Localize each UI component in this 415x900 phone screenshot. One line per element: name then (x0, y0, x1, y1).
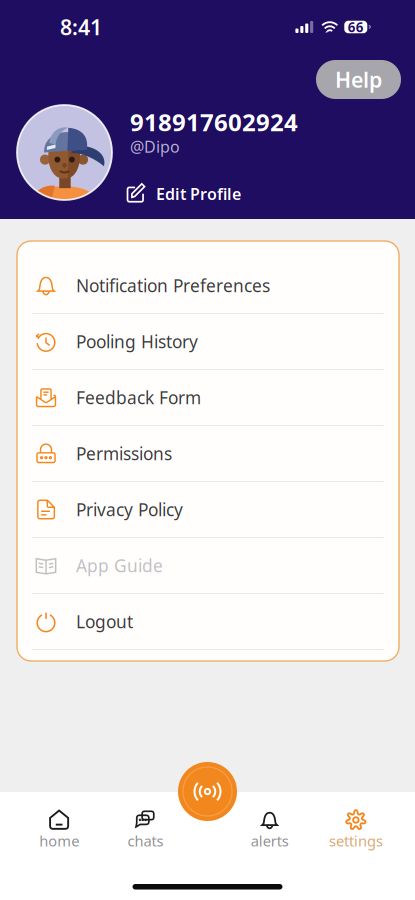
button[interactable]: Broadcast (178, 762, 237, 821)
button[interactable]: Logout (17, 594, 399, 650)
staticText: Edit Profile (156, 183, 241, 204)
staticText: settings (329, 831, 383, 850)
staticText: alerts (251, 831, 289, 850)
button[interactable]: alerts (226, 809, 313, 850)
button[interactable]: Feedback Form (17, 370, 399, 426)
staticText: home (39, 831, 79, 850)
staticText: 8:41 (60, 13, 102, 41)
staticText: @Dipo (130, 136, 180, 157)
staticText: Logout (76, 610, 133, 633)
button[interactable]: chats (102, 809, 188, 850)
staticText: Pooling History (76, 330, 198, 353)
staticText: Permissions (76, 442, 172, 465)
button[interactable]: Help (316, 60, 401, 99)
staticText: 66 (348, 18, 364, 36)
button[interactable]: settings (313, 809, 399, 850)
button[interactable]: Privacy Policy (17, 482, 399, 538)
button[interactable]: Edit Profile (125, 183, 241, 204)
staticText: Feedback Form (76, 386, 201, 409)
staticText: App Guide (76, 554, 163, 577)
button[interactable]: App Guide (17, 538, 399, 594)
staticText: 918917602924 (130, 106, 298, 138)
button[interactable]: Pooling History (17, 314, 399, 370)
button[interactable]: Permissions (17, 426, 399, 482)
staticText: Privacy Policy (76, 498, 183, 521)
staticText: chats (127, 831, 163, 850)
button[interactable]: Notification Preferences (17, 258, 399, 314)
staticText: Help (335, 65, 382, 94)
staticText: Notification Preferences (76, 274, 270, 297)
button[interactable]: home (16, 809, 102, 850)
